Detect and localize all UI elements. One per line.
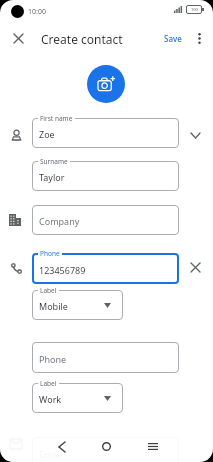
button[interactable]: Work <box>32 383 123 413</box>
button[interactable]: Phone <box>32 342 179 373</box>
staticText: First name <box>40 114 73 123</box>
button[interactable] <box>186 126 204 144</box>
staticText: Label <box>40 379 57 388</box>
staticText: Company <box>39 215 80 227</box>
staticText: Phone <box>40 249 60 258</box>
staticText: 123456789 <box>39 264 86 276</box>
button[interactable]: Company <box>32 205 179 235</box>
button[interactable] <box>187 259 204 276</box>
button[interactable]: Save <box>158 29 188 47</box>
staticText: Surname <box>40 157 68 166</box>
button[interactable] <box>98 438 115 455</box>
staticText: 10:00 <box>28 7 46 17</box>
button[interactable] <box>87 65 125 103</box>
button[interactable]: Mobile <box>32 290 123 320</box>
button[interactable] <box>53 438 70 455</box>
button[interactable]: 123456789 <box>32 253 179 284</box>
button[interactable] <box>10 30 27 47</box>
staticText: Create contact <box>41 31 123 47</box>
button[interactable] <box>144 438 161 455</box>
staticText: Work <box>39 393 62 405</box>
staticText: Mobile <box>39 300 68 312</box>
staticText: 100 <box>191 7 198 12</box>
staticText: Save <box>164 33 182 44</box>
button[interactable] <box>193 30 206 47</box>
button[interactable]: Email <box>32 437 179 462</box>
staticText: Email <box>39 448 63 460</box>
staticText: Zoe <box>39 128 55 140</box>
staticText: Phone <box>39 353 67 365</box>
button[interactable]: Taylor <box>32 161 179 191</box>
button[interactable]: Zoe <box>32 118 179 148</box>
staticText: Taylor <box>39 171 65 183</box>
staticText: Label <box>40 286 57 295</box>
